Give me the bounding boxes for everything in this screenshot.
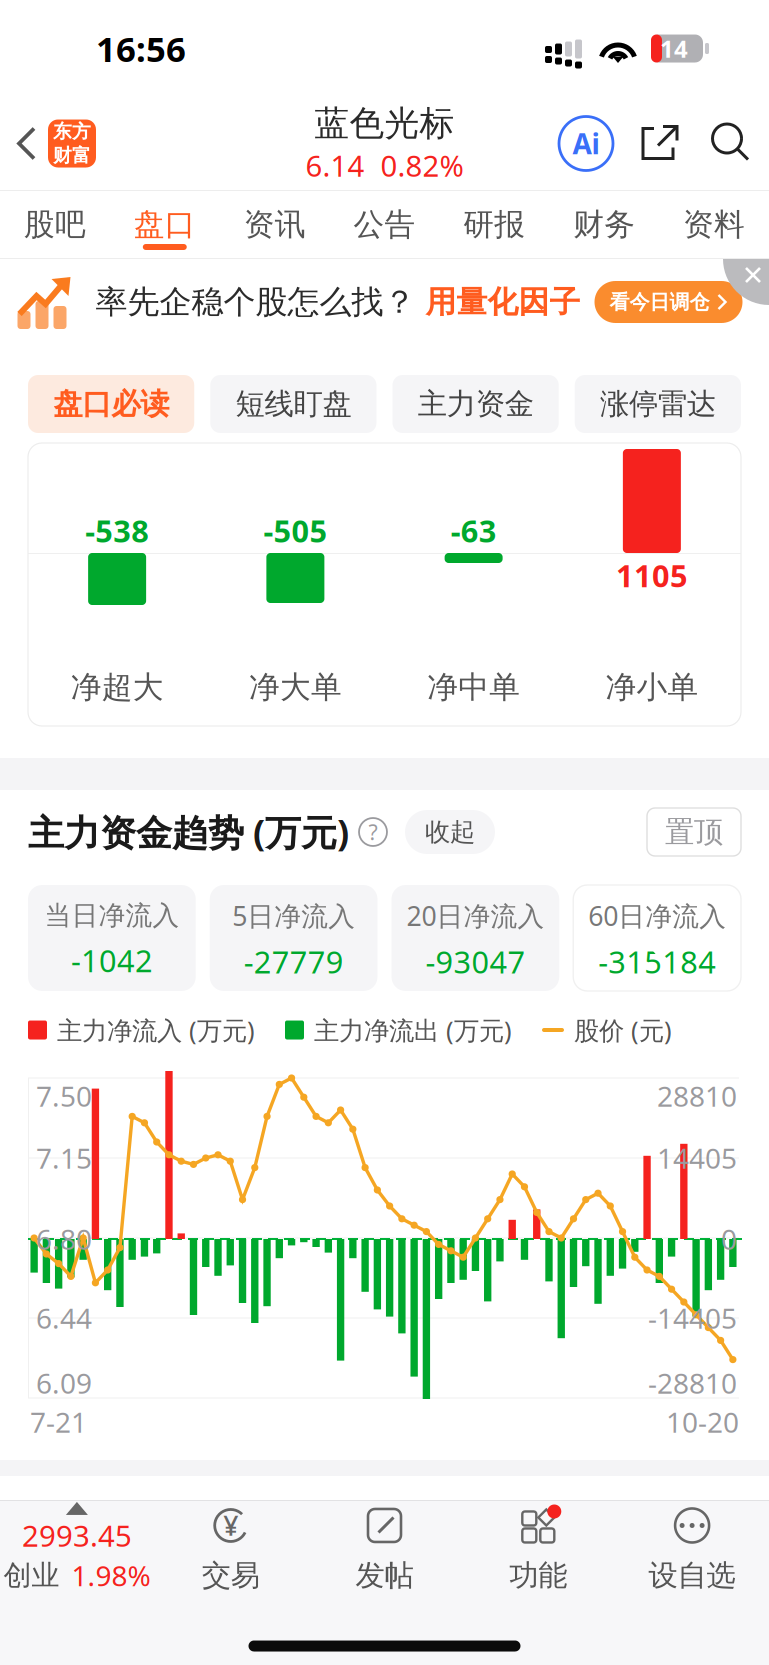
button[interactable]: 60日净流入 bbox=[573, 885, 741, 991]
staticText: 7-21 bbox=[30, 1403, 87, 1441]
staticText: -63 bbox=[451, 510, 497, 551]
staticText: Ai bbox=[572, 125, 599, 162]
staticText: 看今日调仓 bbox=[609, 290, 709, 314]
staticText: 2993.45 bbox=[22, 1516, 132, 1555]
staticText: 资讯 bbox=[244, 206, 306, 243]
staticText: 率先企稳个股怎么找？ bbox=[95, 282, 415, 322]
staticText: 股价 (元) bbox=[574, 1013, 672, 1047]
button[interactable]: Back bbox=[0, 100, 48, 186]
staticText: 置顶 bbox=[665, 814, 723, 850]
button[interactable]: 股吧 bbox=[0, 191, 110, 258]
staticText: 20日净流入 bbox=[406, 898, 544, 933]
staticText: ¥ bbox=[223, 1508, 238, 1543]
button[interactable]: 当日净流入 bbox=[28, 885, 196, 991]
staticText: 净小单 bbox=[605, 668, 698, 706]
staticText: -1042 bbox=[71, 940, 153, 981]
staticText: 财务 bbox=[573, 206, 635, 243]
staticText: 6.80 bbox=[36, 1220, 92, 1258]
staticText: 净大单 bbox=[249, 668, 342, 706]
button[interactable]: ¥ bbox=[154, 1501, 308, 1601]
staticText: 14 bbox=[660, 33, 688, 64]
staticText: 10-20 bbox=[666, 1403, 739, 1441]
staticText: 股吧 bbox=[24, 206, 86, 243]
staticText: 16:56 bbox=[96, 25, 186, 71]
staticText: 14405 bbox=[657, 1139, 737, 1177]
staticText: -14405 bbox=[648, 1299, 737, 1337]
button[interactable]: 5日净流入 bbox=[210, 885, 378, 991]
staticText: 1.98% bbox=[71, 1557, 150, 1594]
staticText: 盘口 bbox=[134, 206, 196, 243]
button[interactable]: 盘口必读 bbox=[28, 375, 194, 433]
staticText: 收起 bbox=[425, 816, 475, 847]
staticText: 资料 bbox=[683, 206, 745, 243]
staticText: 东方 bbox=[53, 120, 91, 143]
button[interactable]: Close bbox=[723, 259, 769, 305]
staticText: -93047 bbox=[425, 941, 525, 982]
staticText: 主力净流出 (万元) bbox=[314, 1013, 512, 1047]
staticText: 交易 bbox=[202, 1557, 260, 1593]
staticText: -315184 bbox=[598, 941, 716, 982]
button[interactable]: 短线盯盘 bbox=[210, 375, 376, 433]
button[interactable]: 主力资金 bbox=[392, 375, 559, 433]
staticText: 研报 bbox=[463, 206, 525, 243]
button[interactable]: 2993.45 bbox=[0, 1501, 154, 1601]
staticText: 6.14 bbox=[305, 146, 364, 185]
staticText: 当日净流入 bbox=[44, 899, 179, 932]
button[interactable]: 设自选 bbox=[615, 1501, 769, 1601]
staticText: -28810 bbox=[648, 1364, 737, 1402]
staticText: -27779 bbox=[244, 941, 344, 982]
staticText: 28810 bbox=[657, 1077, 737, 1115]
button[interactable]: 盘口 bbox=[110, 191, 220, 258]
button[interactable]: 研报 bbox=[439, 191, 549, 258]
staticText: 主力资金趋势 (万元) bbox=[28, 808, 349, 856]
staticText: 7.15 bbox=[36, 1139, 92, 1177]
button[interactable]: Share bbox=[637, 118, 683, 168]
staticText: 盘口必读 bbox=[53, 386, 169, 422]
staticText: 净超大 bbox=[71, 668, 164, 706]
button[interactable]: 收起 bbox=[405, 810, 495, 854]
staticText: 蓝色光标 bbox=[314, 102, 454, 145]
staticText: 短线盯盘 bbox=[235, 386, 351, 422]
button[interactable]: Help bbox=[359, 818, 387, 846]
button[interactable]: 资料 bbox=[659, 191, 769, 258]
button[interactable]: Search bbox=[707, 118, 753, 168]
staticText: -538 bbox=[85, 510, 149, 551]
button[interactable]: 涨停雷达 bbox=[575, 375, 741, 433]
staticText: 6.44 bbox=[36, 1299, 92, 1337]
staticText: 用量化因子 bbox=[425, 283, 580, 321]
staticText: 0.82% bbox=[380, 146, 463, 185]
button[interactable]: AI bbox=[559, 116, 613, 170]
staticText: 创业 bbox=[3, 1558, 59, 1593]
button[interactable]: 功能 bbox=[461, 1501, 615, 1601]
staticText: 60日净流入 bbox=[588, 898, 726, 933]
staticText: 财富 bbox=[53, 144, 91, 167]
staticText: 主力资金 bbox=[418, 386, 534, 422]
staticText: 设自选 bbox=[649, 1557, 736, 1593]
staticText: 净中单 bbox=[427, 668, 520, 706]
staticText: 6.09 bbox=[36, 1364, 92, 1402]
staticText: 发帖 bbox=[355, 1557, 413, 1593]
button[interactable]: 率先企稳个股怎么找？ bbox=[0, 259, 769, 345]
button[interactable]: 资讯 bbox=[220, 191, 330, 258]
button[interactable]: 财务 bbox=[549, 191, 659, 258]
staticText: ? bbox=[368, 818, 377, 846]
button[interactable]: 置顶 bbox=[647, 808, 741, 856]
staticText: 功能 bbox=[509, 1557, 567, 1593]
staticText: 1105 bbox=[616, 555, 688, 596]
button[interactable]: East Money bbox=[48, 119, 96, 167]
staticText: -505 bbox=[263, 510, 327, 551]
staticText: 0 bbox=[721, 1220, 737, 1258]
staticText: 涨停雷达 bbox=[600, 386, 716, 422]
staticText: 5日净流入 bbox=[232, 898, 355, 933]
staticText: 主力净流入 (万元) bbox=[57, 1013, 255, 1047]
button[interactable]: 20日净流入 bbox=[391, 885, 559, 991]
staticText: 7.50 bbox=[36, 1077, 92, 1115]
button[interactable]: 发帖 bbox=[308, 1501, 461, 1601]
staticText: 公告 bbox=[353, 206, 415, 243]
button[interactable]: 公告 bbox=[330, 191, 439, 258]
